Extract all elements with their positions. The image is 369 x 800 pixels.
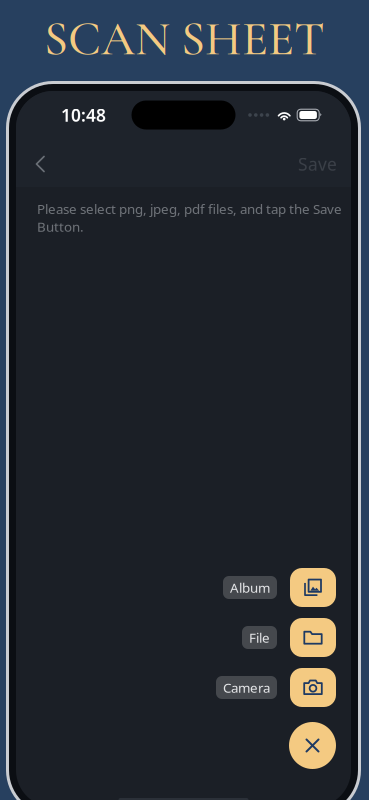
staticText: Please select png, jpeg, pdf files, and … <box>37 200 342 235</box>
button[interactable]: Camera <box>216 676 277 699</box>
staticText: Camera <box>223 679 270 696</box>
button[interactable]: Back <box>26 144 54 184</box>
button[interactable]: Save <box>298 144 337 184</box>
staticText: SCAN SHEET <box>44 10 325 68</box>
button[interactable]: Album <box>223 576 277 599</box>
staticText: 10:48 <box>61 103 106 126</box>
button[interactable]: Close <box>289 722 336 769</box>
button[interactable]: File <box>242 626 277 649</box>
button[interactable]: Take photo <box>290 668 336 707</box>
staticText: Album <box>230 579 270 596</box>
staticText: Save <box>298 152 337 175</box>
button[interactable]: Choose from album <box>290 568 336 607</box>
staticText: File <box>249 629 270 646</box>
button[interactable]: Choose file <box>290 618 336 657</box>
